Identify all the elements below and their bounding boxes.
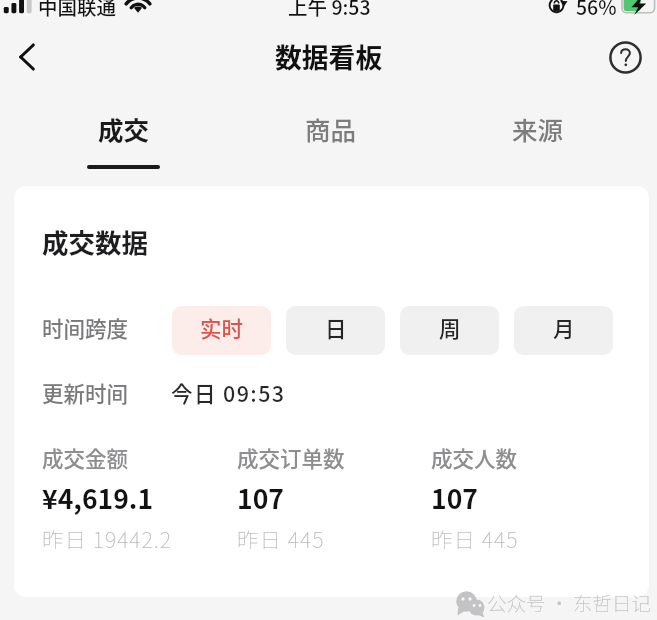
- button[interactable]: 成交: [20, 88, 227, 186]
- staticText: 来源: [512, 110, 564, 147]
- staticText: 实时: [200, 312, 244, 343]
- staticText: 上午 9:53: [288, 0, 371, 18]
- button[interactable]: 月: [514, 306, 613, 355]
- staticText: ¥4,619.1: [42, 478, 154, 516]
- staticText: 成交数据: [42, 222, 148, 260]
- button[interactable]: 商品: [227, 88, 434, 186]
- staticText: 月: [553, 312, 575, 343]
- staticText: 商品: [305, 110, 357, 147]
- staticText: 成交: [98, 110, 150, 147]
- staticText: 成交人数: [431, 442, 518, 473]
- staticText: 成交订单数: [237, 442, 345, 473]
- staticText: 中国联通: [38, 0, 117, 18]
- button[interactable]: Help: [602, 34, 648, 80]
- staticText: 56%: [576, 0, 617, 18]
- button[interactable]: 实时: [172, 306, 271, 355]
- button[interactable]: 周: [400, 306, 499, 355]
- staticText: 昨日 19442.2: [42, 523, 172, 554]
- staticText: 今日 09:53: [171, 377, 286, 408]
- staticText: 更新时间: [42, 377, 129, 408]
- staticText: 昨日 445: [431, 523, 519, 554]
- staticText: 107: [237, 478, 284, 516]
- button[interactable]: 日: [286, 306, 385, 355]
- staticText: 时间跨度: [42, 312, 129, 343]
- staticText: 成交金额: [42, 442, 129, 473]
- staticText: 107: [431, 478, 478, 516]
- staticText: 周: [439, 312, 461, 343]
- staticText: 日: [325, 312, 347, 343]
- staticText: 公众号 · 东哲日记: [487, 588, 651, 616]
- staticText: 数据看板: [275, 37, 383, 76]
- button[interactable]: 来源: [434, 88, 641, 186]
- staticText: 昨日 445: [237, 523, 325, 554]
- button[interactable]: Back: [4, 33, 52, 81]
